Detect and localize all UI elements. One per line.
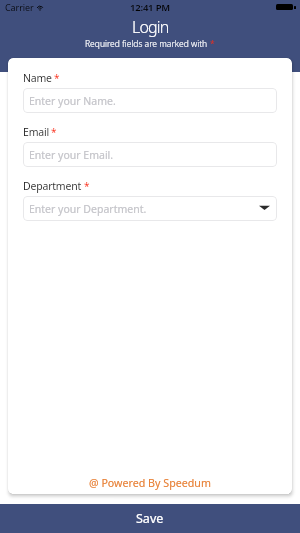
staticText: Name xyxy=(23,71,52,85)
staticText: * xyxy=(51,125,57,139)
staticText: Enter your Email. xyxy=(29,148,114,162)
other: Open department dropdown xyxy=(259,203,270,214)
staticText: * xyxy=(84,179,90,193)
staticText: * xyxy=(54,71,60,85)
staticText: 12:41 PM xyxy=(130,1,170,14)
staticText: Enter your Department. xyxy=(29,202,147,216)
button[interactable]: Enter your Department. xyxy=(23,196,277,221)
staticText: Carrier xyxy=(5,1,34,13)
staticText: @ Powered By Speedum xyxy=(89,476,211,491)
button[interactable]: Enter your Name. xyxy=(23,88,277,113)
staticText: Login xyxy=(132,16,169,38)
staticText: Required fields are marked with xyxy=(85,38,210,50)
staticText: Email xyxy=(23,125,49,139)
staticText: * xyxy=(210,38,215,50)
button[interactable]: Enter your Email. xyxy=(23,142,277,167)
staticText: Enter your Name. xyxy=(29,94,116,108)
staticText: Save xyxy=(136,510,164,527)
button[interactable]: Save xyxy=(0,504,300,533)
staticText: Department xyxy=(23,179,82,193)
